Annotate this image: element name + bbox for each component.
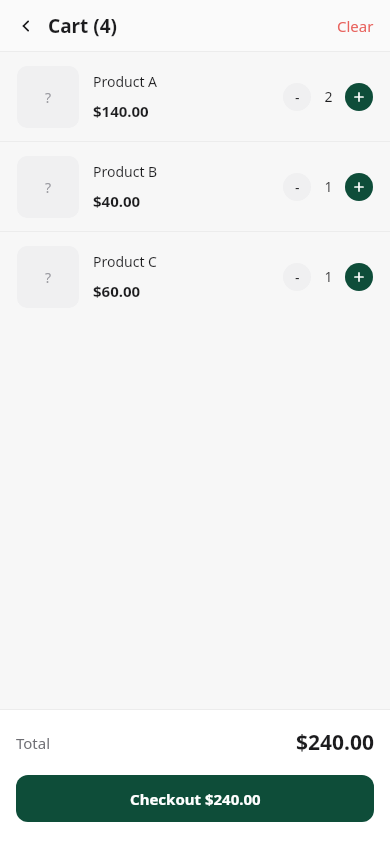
staticText: Product A bbox=[93, 72, 158, 91]
staticText: $40.00 bbox=[93, 191, 141, 211]
button[interactable]: Decrease quantity bbox=[283, 83, 311, 111]
staticText: Product B bbox=[93, 162, 158, 181]
staticText: ? bbox=[45, 178, 52, 197]
staticText: Total bbox=[16, 733, 51, 753]
staticText: ? bbox=[45, 268, 52, 287]
button[interactable]: ? bbox=[0, 142, 390, 231]
button[interactable]: Checkout $240.00 bbox=[16, 775, 374, 822]
staticText: Checkout $240.00 bbox=[130, 789, 261, 809]
staticText: ? bbox=[45, 88, 52, 107]
button[interactable]: Clear bbox=[321, 10, 390, 42]
button[interactable]: ? bbox=[0, 52, 390, 141]
button[interactable]: ? bbox=[0, 232, 390, 321]
staticText: Product C bbox=[93, 252, 157, 271]
button[interactable]: Increase quantity bbox=[345, 263, 373, 291]
button[interactable]: Decrease quantity bbox=[283, 173, 311, 201]
button[interactable]: Back bbox=[10, 10, 42, 42]
staticText: - bbox=[295, 178, 300, 197]
staticText: $240.00 bbox=[296, 728, 374, 757]
button[interactable]: Increase quantity bbox=[345, 83, 373, 111]
staticText: Clear bbox=[337, 16, 374, 36]
staticText: 2 bbox=[324, 87, 333, 106]
button[interactable]: Decrease quantity bbox=[283, 263, 311, 291]
staticText: $140.00 bbox=[93, 101, 149, 121]
button[interactable]: Increase quantity bbox=[345, 173, 373, 201]
staticText: 1 bbox=[324, 177, 333, 196]
staticText: 1 bbox=[324, 267, 333, 286]
staticText: $60.00 bbox=[93, 281, 141, 301]
staticText: - bbox=[295, 88, 300, 107]
staticText: Cart (4) bbox=[48, 13, 118, 39]
staticText: - bbox=[295, 268, 300, 287]
